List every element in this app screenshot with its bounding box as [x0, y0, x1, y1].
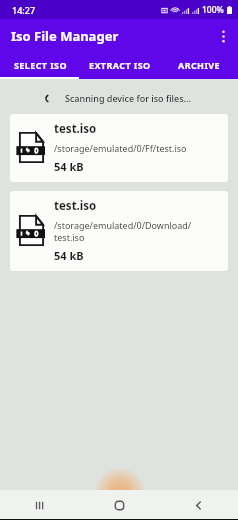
- button[interactable]: Back: [159, 490, 238, 520]
- staticText: test.iso: [54, 231, 85, 243]
- button[interactable]: More options: [208, 21, 238, 51]
- button[interactable]: Recent apps: [0, 490, 80, 520]
- button[interactable]: test.iso: [10, 191, 228, 271]
- staticText: ARCHIVE: [178, 59, 220, 71]
- staticText: 100%: [202, 4, 224, 16]
- staticText: 54 kB: [54, 248, 84, 263]
- button[interactable]: EXTRACT ISO: [80, 52, 159, 77]
- staticText: test.iso: [54, 198, 97, 214]
- staticText: /storage/emulated/0/Ff/test.iso: [54, 142, 187, 154]
- staticText: Iso File Manager: [11, 27, 119, 45]
- staticText: SELECT ISO: [14, 59, 67, 71]
- button[interactable]: ARCHIVE: [159, 52, 238, 77]
- button[interactable]: SELECT ISO: [0, 52, 80, 77]
- staticText: 54 kB: [54, 159, 84, 174]
- staticText: EXTRACT ISO: [89, 59, 151, 71]
- staticText: 14:27: [12, 4, 36, 16]
- button[interactable]: test.iso: [10, 114, 228, 182]
- staticText: Scanning device for iso files...: [65, 92, 191, 104]
- staticText: /storage/emulated/0/Download/: [54, 219, 192, 231]
- staticText: test.iso: [54, 121, 97, 137]
- button[interactable]: Home: [80, 490, 159, 520]
